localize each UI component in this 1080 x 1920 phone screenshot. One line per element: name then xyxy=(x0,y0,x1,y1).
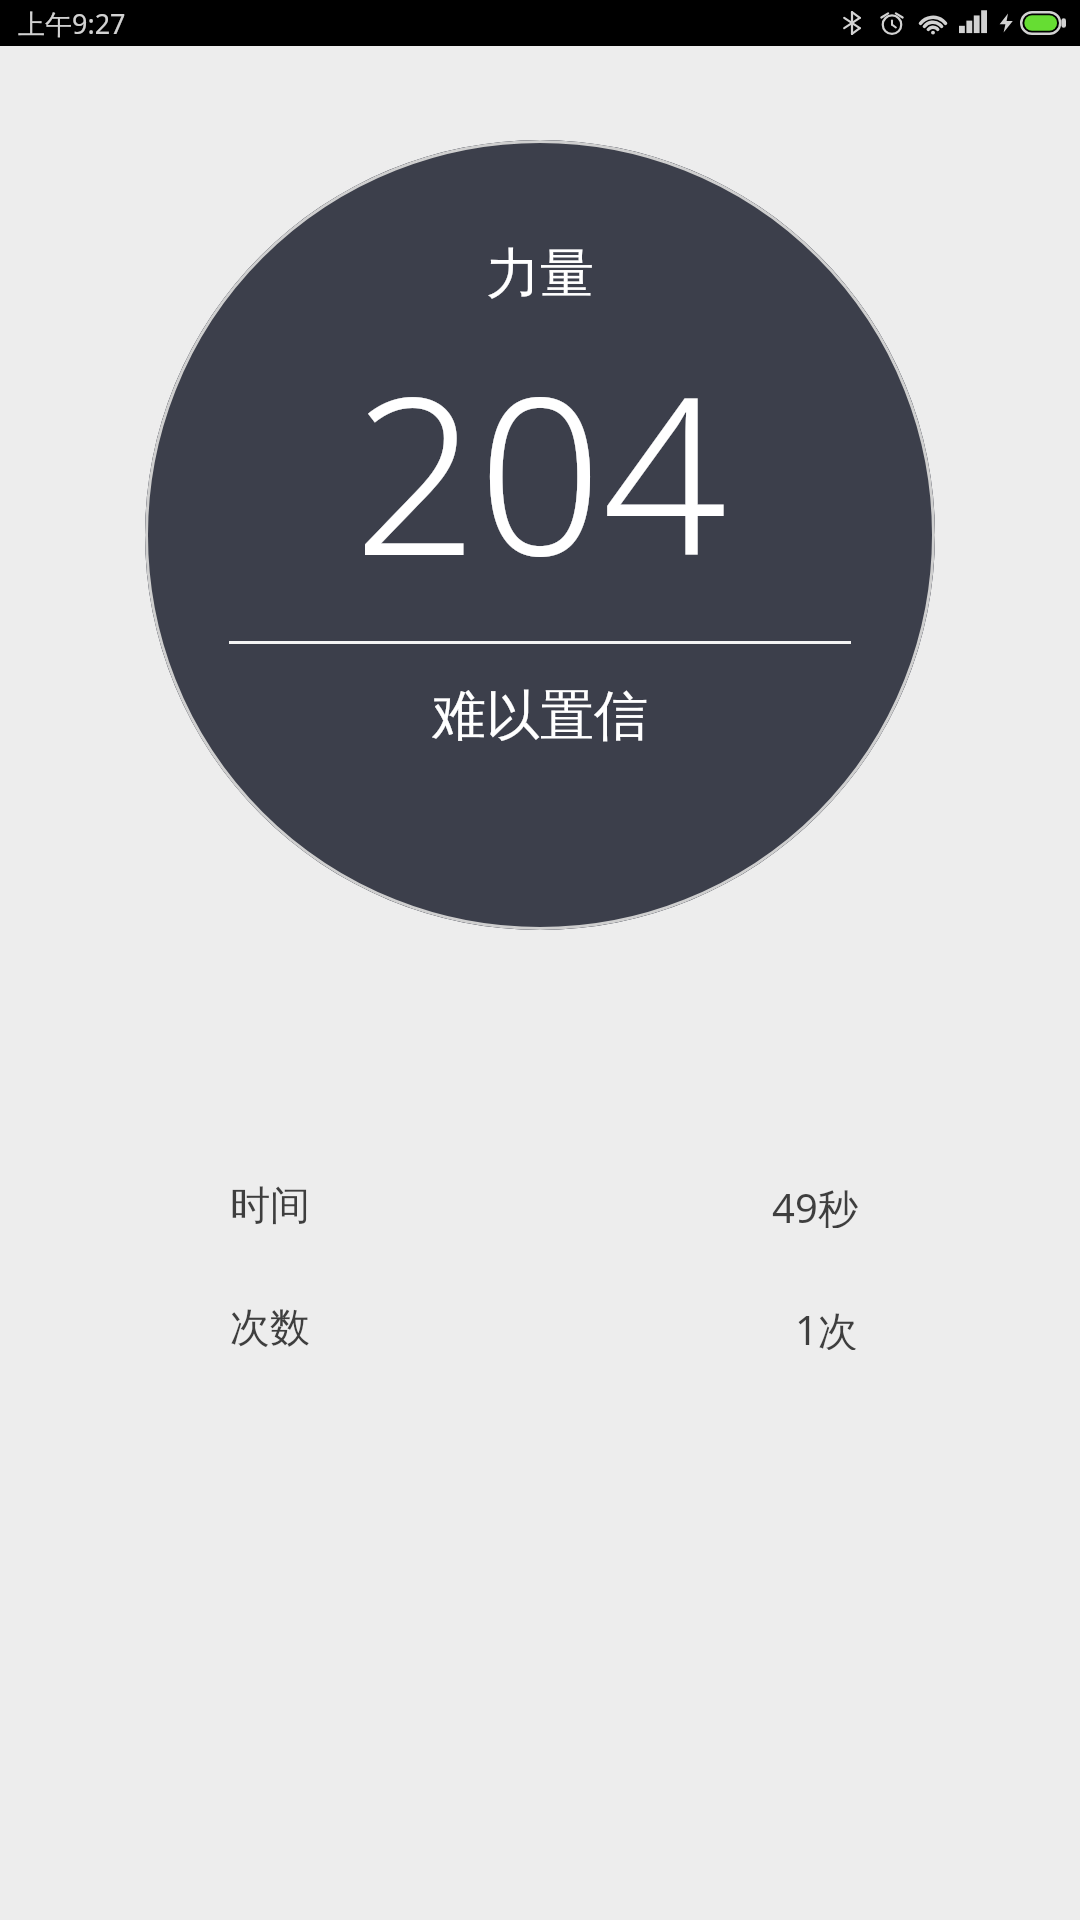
staticText: 力量 xyxy=(486,240,594,308)
button[interactable]: 时间 xyxy=(0,1180,1080,1228)
staticText: 时间 xyxy=(230,1180,310,1228)
staticText: 1次 xyxy=(795,1302,858,1350)
button[interactable]: 次数 xyxy=(0,1302,1080,1350)
staticText: 次数 xyxy=(230,1302,310,1350)
button[interactable]: 力量 204 难以置信 xyxy=(145,140,935,930)
staticText: 49秒 xyxy=(772,1180,858,1228)
staticText: 难以置信 xyxy=(432,682,648,750)
staticText: 204 xyxy=(353,322,727,619)
staticText: 上午9:27 xyxy=(18,5,126,42)
